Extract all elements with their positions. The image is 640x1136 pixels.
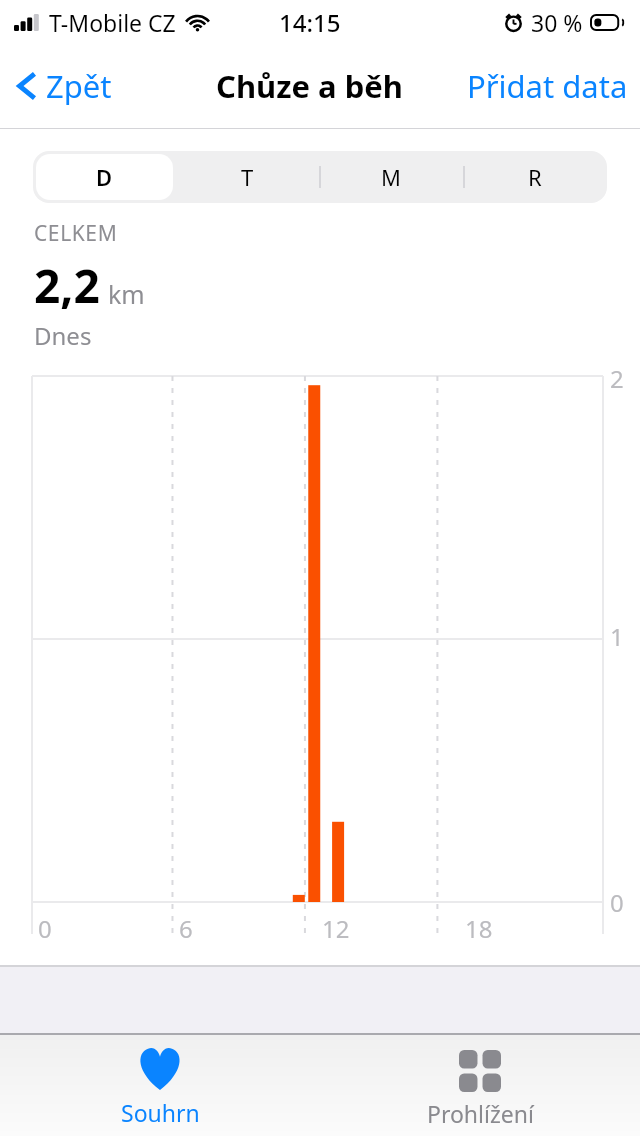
button[interactable]: Zpět — [8, 57, 120, 115]
other: Souhrn — [136, 1047, 184, 1091]
button[interactable]: Přidat data — [461, 55, 634, 117]
staticText: Dnes — [34, 319, 92, 352]
staticText: Souhrn — [121, 1097, 200, 1128]
staticText: 2,2 — [34, 254, 100, 317]
staticText: 2 — [610, 362, 624, 395]
staticText: Zpět — [46, 65, 112, 107]
staticText: 6 — [179, 912, 193, 945]
staticText: km — [108, 277, 145, 311]
staticText: Přidat data — [467, 65, 628, 107]
staticText: T-Mobile CZ — [49, 7, 176, 38]
staticText: 18 — [465, 912, 493, 945]
staticText: 0 — [610, 886, 624, 919]
button[interactable]: T — [176, 151, 319, 203]
staticText: 30 % — [531, 7, 583, 38]
staticText: 12 — [322, 912, 350, 945]
staticText: 1 — [610, 620, 624, 653]
staticText: 14:15 — [279, 6, 341, 39]
staticText: R — [528, 162, 542, 192]
button[interactable]: M — [319, 151, 463, 203]
staticText: CELKEM — [34, 219, 118, 248]
other: Prohlížení — [459, 1050, 501, 1092]
button[interactable]: D — [33, 151, 176, 203]
staticText: M — [381, 162, 401, 192]
button[interactable]: R — [463, 151, 607, 203]
staticText: Prohlížení — [427, 1098, 534, 1129]
button[interactable]: Prohlížení — [320, 1035, 640, 1136]
staticText: Chůze a běh — [216, 65, 403, 107]
staticText: D — [96, 162, 113, 192]
staticText: 0 — [38, 912, 52, 945]
button[interactable]: Souhrn — [0, 1035, 320, 1136]
staticText: T — [241, 162, 254, 192]
